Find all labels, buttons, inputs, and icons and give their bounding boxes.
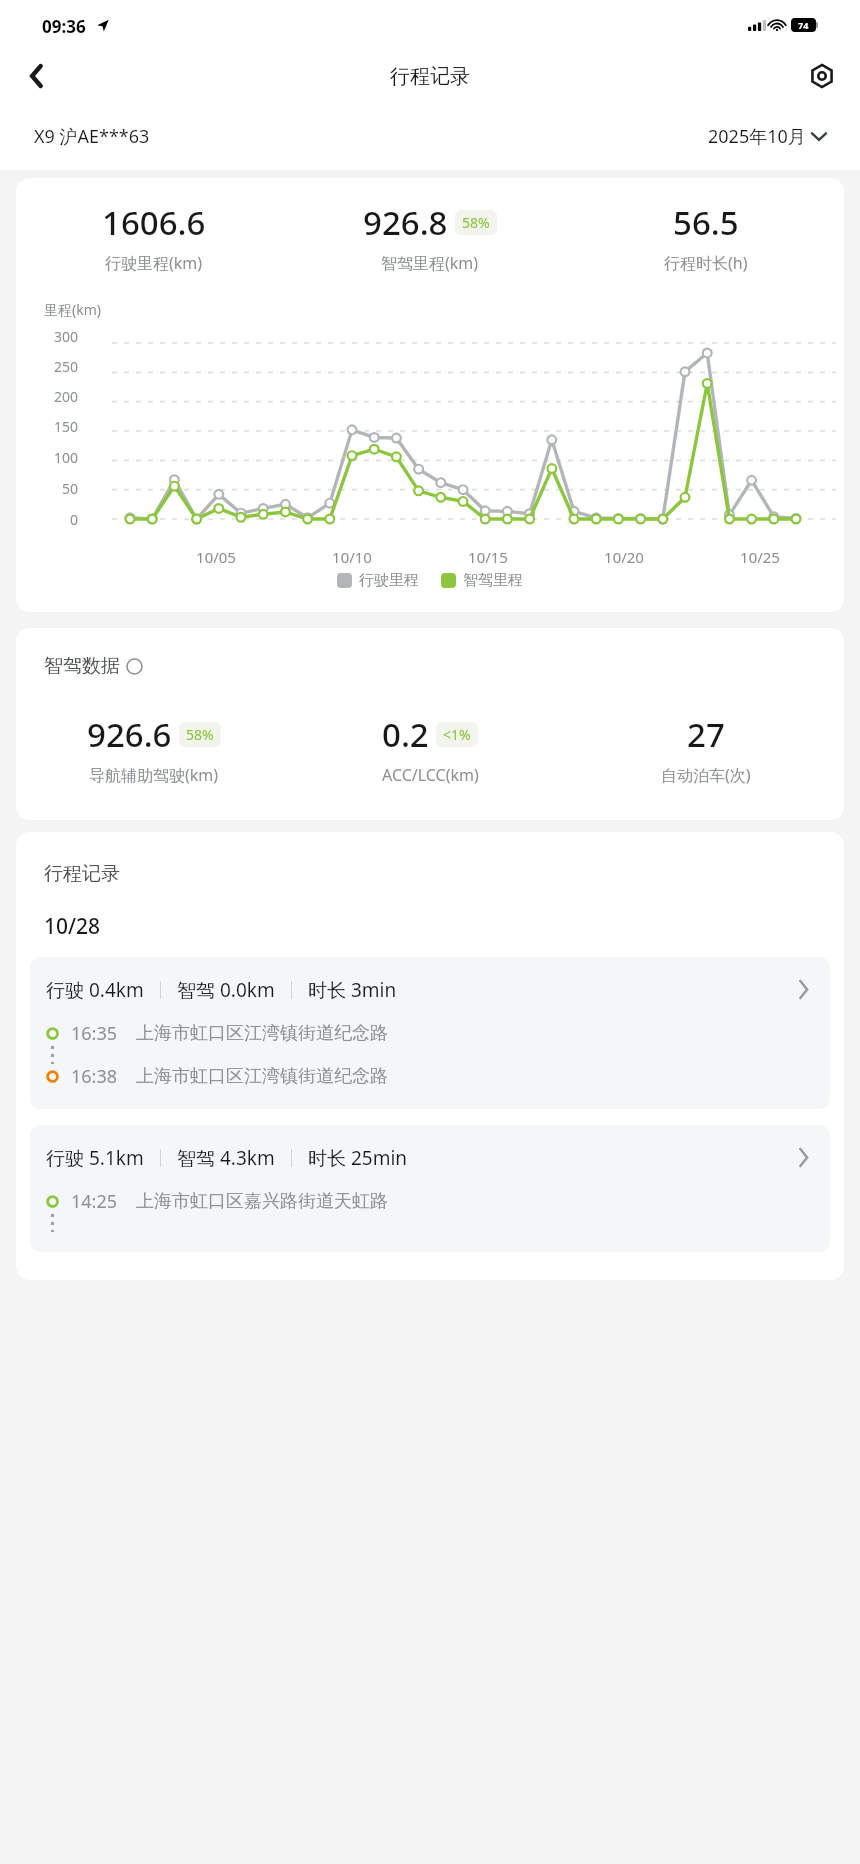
- staticText: 时长 3min: [308, 977, 397, 1003]
- staticText: 行驶 0.4km: [46, 977, 144, 1003]
- staticText: 1606.6: [102, 200, 206, 245]
- staticText: ACC/LCC(km): [382, 764, 479, 786]
- staticText: 10/28: [44, 912, 101, 941]
- staticText: 行程记录: [390, 64, 470, 89]
- staticText: 10/25: [692, 547, 828, 567]
- staticText: 0: [30, 510, 78, 529]
- staticText: 上海市虹口区江湾镇街道纪念路: [136, 1065, 388, 1088]
- staticText: 100: [30, 448, 78, 467]
- button[interactable]: Back: [14, 54, 58, 98]
- button[interactable]: Settings: [802, 56, 842, 96]
- staticText: 10/20: [556, 547, 692, 567]
- staticText: 里程(km): [44, 300, 101, 319]
- button[interactable]: 行驶 0.4km: [30, 957, 830, 1109]
- staticText: 时长 25min: [308, 1145, 408, 1171]
- staticText: 09:36: [42, 15, 86, 38]
- staticText: 27: [687, 712, 725, 757]
- staticText: 58%: [186, 725, 214, 744]
- staticText: 智驾里程: [463, 571, 523, 590]
- button[interactable]: 行驶 5.1km: [30, 1125, 830, 1252]
- staticText: 50: [30, 479, 78, 498]
- staticText: X9 沪AE***63: [34, 124, 150, 149]
- staticText: 行驶里程(km): [105, 252, 203, 274]
- staticText: 智驾里程(km): [381, 252, 479, 274]
- staticText: 300: [30, 327, 78, 346]
- staticText: 10/05: [148, 547, 284, 567]
- staticText: 自动泊车(次): [661, 764, 751, 786]
- staticText: 智驾数据: [44, 654, 120, 678]
- staticText: 10/15: [420, 547, 556, 567]
- staticText: 150: [30, 417, 78, 436]
- staticText: 58%: [462, 213, 490, 232]
- staticText: 10/10: [284, 547, 420, 567]
- staticText: 上海市虹口区江湾镇街道纪念路: [136, 1022, 388, 1045]
- staticText: 0.2: [382, 712, 429, 757]
- staticText: 74: [798, 19, 809, 31]
- staticText: 行驶 5.1km: [46, 1145, 144, 1171]
- staticText: 16:35: [71, 1021, 118, 1046]
- staticText: 56.5: [673, 200, 739, 245]
- staticText: 14:25: [71, 1189, 118, 1214]
- staticText: 200: [30, 387, 78, 406]
- button[interactable]: 2025年10月: [708, 124, 826, 149]
- staticText: 250: [30, 357, 78, 376]
- staticText: 行驶里程: [359, 571, 419, 590]
- staticText: 16:38: [71, 1064, 118, 1089]
- button[interactable]: Help: [126, 658, 143, 675]
- staticText: 导航辅助驾驶(km): [89, 764, 219, 786]
- staticText: 行程记录: [44, 862, 120, 886]
- staticText: 行程时长(h): [664, 252, 748, 274]
- staticText: 智驾 4.3km: [177, 1145, 275, 1171]
- staticText: 926.8: [363, 200, 448, 245]
- staticText: 智驾 0.0km: [177, 977, 275, 1003]
- staticText: 上海市虹口区嘉兴路街道天虹路: [136, 1190, 388, 1213]
- staticText: 2025年10月: [708, 124, 806, 149]
- staticText: <1%: [443, 725, 471, 744]
- staticText: 926.6: [87, 712, 172, 757]
